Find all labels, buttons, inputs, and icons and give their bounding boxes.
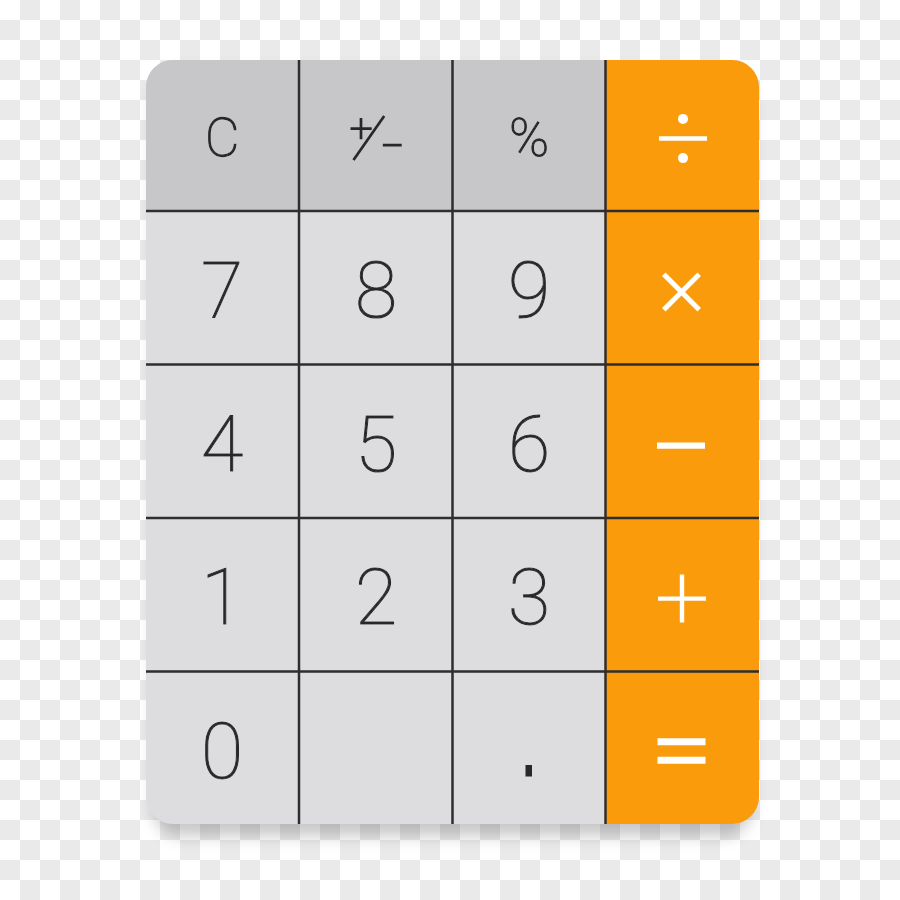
button[interactable]: C	[146, 60, 299, 211]
staticText: 0	[201, 707, 244, 797]
button[interactable]: 7	[146, 211, 299, 365]
button[interactable]: 2	[299, 518, 453, 672]
staticText: 8	[355, 246, 398, 336]
staticText: 4	[201, 400, 244, 490]
staticText: 7	[201, 246, 244, 336]
staticText: 5	[355, 400, 398, 490]
staticText: C	[205, 107, 240, 169]
button[interactable]: %	[453, 60, 606, 211]
staticText: 1	[201, 553, 244, 643]
staticText: 7	[201, 246, 244, 336]
staticText: 2	[355, 553, 398, 643]
staticText: 9	[508, 246, 551, 336]
staticText: C	[205, 107, 240, 169]
button[interactable]: 6	[453, 365, 606, 519]
button[interactable]	[299, 672, 453, 824]
button[interactable]: 1	[146, 518, 299, 672]
button[interactable]: 9	[453, 211, 606, 365]
button[interactable]: 0	[146, 672, 299, 824]
staticText: 2	[355, 553, 398, 643]
button[interactable]: 5	[299, 365, 453, 519]
staticText: 6	[508, 400, 551, 490]
button[interactable]	[606, 211, 759, 365]
staticText: 1	[201, 553, 244, 643]
staticText: 4	[201, 400, 244, 490]
staticText: 9	[508, 246, 551, 336]
staticText: 6	[508, 400, 551, 490]
button[interactable]	[299, 60, 453, 211]
button[interactable]: 8	[299, 211, 453, 365]
button[interactable]	[606, 518, 759, 672]
button[interactable]	[606, 365, 759, 519]
button[interactable]: 4	[146, 365, 299, 519]
staticText: 5	[355, 400, 398, 490]
button[interactable]	[606, 672, 759, 824]
staticText: 8	[355, 246, 398, 336]
staticText: 3	[508, 553, 551, 643]
staticText: %	[509, 106, 550, 169]
staticText: 0	[201, 707, 244, 797]
button[interactable]	[606, 60, 759, 211]
staticText: %	[509, 106, 550, 169]
button[interactable]	[453, 672, 606, 824]
button[interactable]: 3	[453, 518, 606, 672]
staticText: 3	[508, 553, 551, 643]
